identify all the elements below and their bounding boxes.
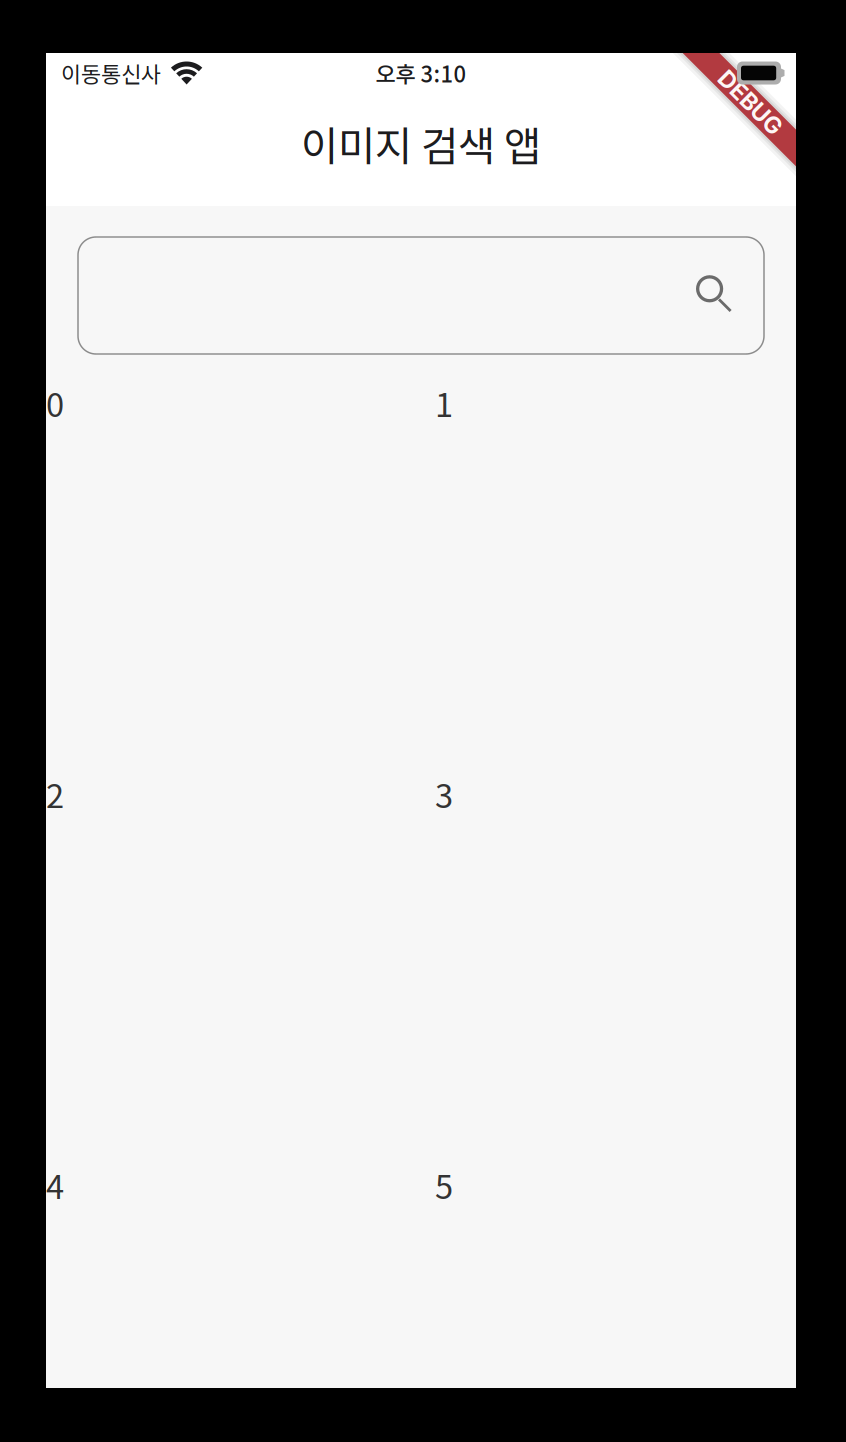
button[interactable]: 검색	[78, 237, 764, 354]
staticText: 이동통신사	[61, 57, 161, 89]
staticText: 2	[46, 770, 64, 817]
button[interactable]: 5	[435, 1161, 796, 1442]
staticText: 4	[46, 1161, 64, 1208]
button[interactable]: 4	[46, 1161, 407, 1442]
button[interactable]: 3	[435, 770, 796, 1131]
button[interactable]: 2	[46, 770, 407, 1131]
staticText: 0	[46, 379, 64, 426]
button[interactable]: 1	[435, 379, 796, 740]
staticText: 5	[435, 1161, 453, 1208]
staticText: 오후 3:10	[375, 57, 466, 89]
button[interactable]: 0	[46, 379, 407, 740]
staticText: 이미지 검색 앱	[301, 114, 541, 173]
staticText: DEBUG	[701, 109, 781, 138]
staticText: 3	[435, 770, 453, 817]
staticText: 1	[435, 379, 453, 426]
